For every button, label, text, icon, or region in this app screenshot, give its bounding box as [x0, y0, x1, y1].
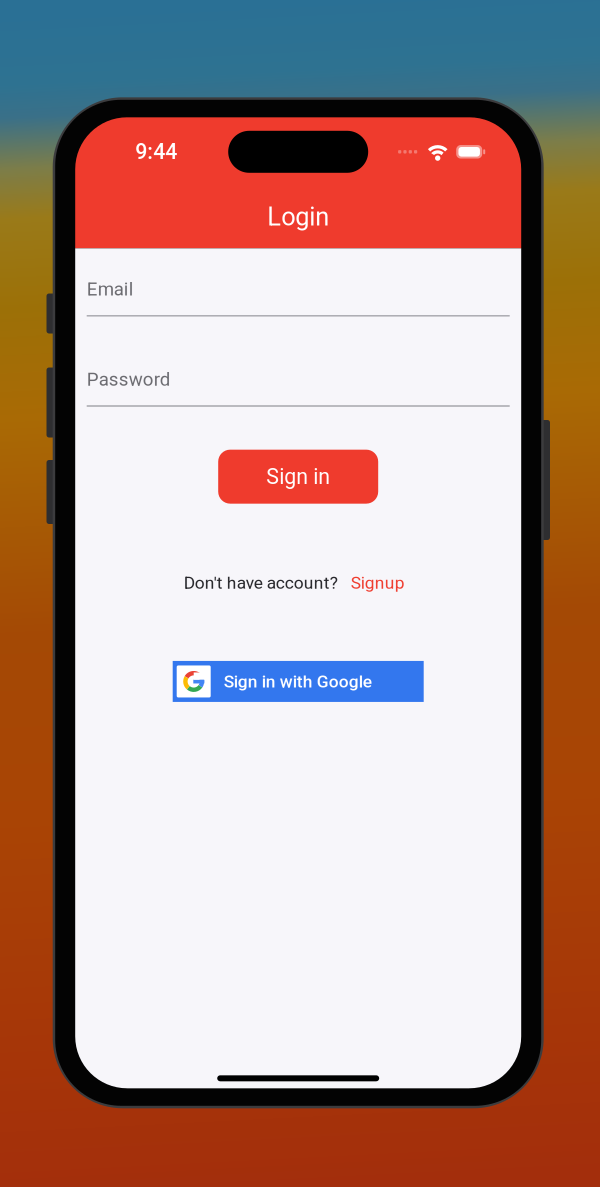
staticText: Sign in: [266, 464, 330, 489]
button[interactable]: Signup: [351, 573, 405, 593]
staticText: Sign in with Google: [224, 671, 372, 692]
staticText: Password: [87, 368, 171, 390]
button[interactable]: Sign in: [218, 450, 378, 504]
staticText: Email: [87, 278, 134, 300]
button[interactable]: Sign in with Google: [173, 661, 424, 702]
staticText: 9:44: [135, 139, 177, 164]
staticText: Signup: [351, 573, 405, 593]
staticText: Login: [267, 202, 329, 232]
staticText: Don't have account?: [184, 573, 338, 593]
